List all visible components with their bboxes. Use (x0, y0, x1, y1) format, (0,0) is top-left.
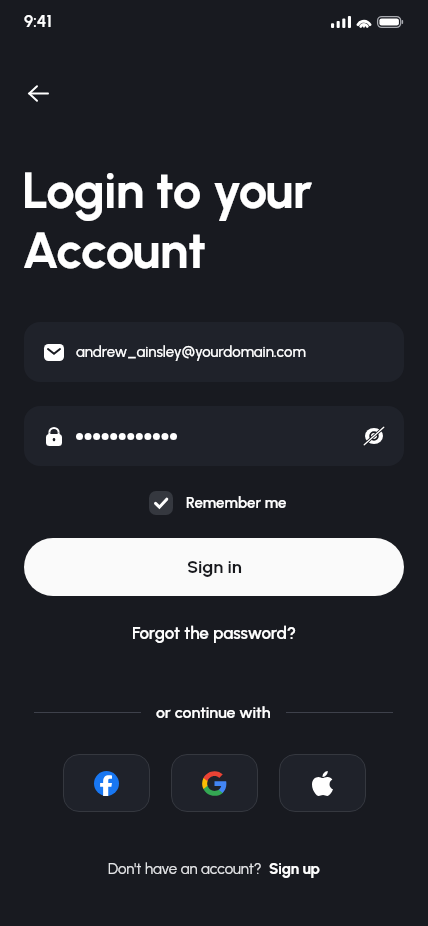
staticText: Remember me (186, 494, 287, 512)
button[interactable]: Sign in with Apple (279, 754, 366, 812)
button[interactable]: Sign in with Google (171, 754, 258, 812)
button[interactable]: Show password (24, 406, 404, 466)
staticText: Don't have an account? (108, 860, 262, 878)
button[interactable]: Sign in (24, 538, 404, 596)
button[interactable]: Back (14, 69, 62, 117)
staticText: Sign in (187, 556, 242, 578)
button[interactable]: Forgot the password? (132, 623, 297, 643)
staticText: 9:41 (24, 11, 52, 31)
button[interactable]: Remember me (149, 491, 287, 515)
staticText: andrew_ainsley@yourdomain.com (76, 343, 306, 361)
button[interactable]: Sign in with Facebook (63, 754, 150, 812)
staticText: Login to your Account (22, 160, 312, 280)
button[interactable]: Show password (362, 424, 386, 448)
button[interactable]: andrew_ainsley@yourdomain.com (24, 322, 404, 382)
button[interactable]: Sign up (269, 860, 320, 878)
staticText: or continue with (156, 703, 271, 722)
